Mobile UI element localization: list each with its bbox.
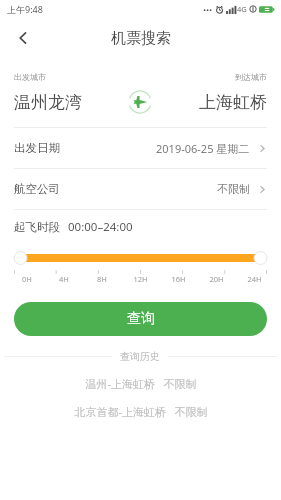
staticText: 4G: [237, 4, 247, 14]
staticText: 起飞时段: [14, 220, 60, 234]
staticText: 12H: [133, 274, 148, 284]
staticText: 上午9:48: [7, 3, 43, 15]
button[interactable]: Swap cities: [127, 89, 153, 115]
button[interactable]: 航空公司: [0, 169, 281, 209]
button[interactable]: 温州-上海虹桥 不限制: [0, 373, 281, 393]
staticText: 到达城市: [235, 72, 267, 82]
button[interactable]: 查询: [14, 302, 267, 336]
staticText: 24H: [247, 274, 262, 284]
staticText: 00:00–24:00: [68, 219, 133, 235]
button[interactable]: 上海虹桥: [153, 92, 267, 113]
staticText: 查询历史: [120, 350, 160, 363]
staticText: 4H: [59, 274, 69, 284]
staticText: 温州龙湾: [14, 92, 82, 113]
button[interactable]: Back: [6, 21, 40, 55]
staticText: 出发城市: [14, 72, 46, 82]
button[interactable]: 北京首都-上海虹桥 不限制: [0, 401, 281, 421]
staticText: 上海虹桥: [199, 92, 267, 113]
staticText: 20H: [209, 274, 224, 284]
staticText: 2019-06-25 星期二: [156, 141, 250, 156]
staticText: 0H: [22, 274, 32, 284]
staticText: 北京首都-上海虹桥 不限制: [74, 404, 208, 419]
button[interactable]: 温州龙湾: [14, 92, 127, 113]
staticText: 16H: [171, 274, 186, 284]
staticText: 8H: [97, 274, 107, 284]
staticText: 航空公司: [14, 182, 60, 196]
button[interactable]: Departure time range slider: [14, 248, 267, 268]
staticText: 不限制: [217, 182, 250, 196]
staticText: 出发日期: [14, 141, 60, 155]
staticText: 温州-上海虹桥 不限制: [85, 376, 197, 391]
staticText: 机票搜索: [111, 29, 171, 48]
staticText: 查询: [127, 310, 155, 328]
button[interactable]: 出发日期: [0, 128, 281, 168]
